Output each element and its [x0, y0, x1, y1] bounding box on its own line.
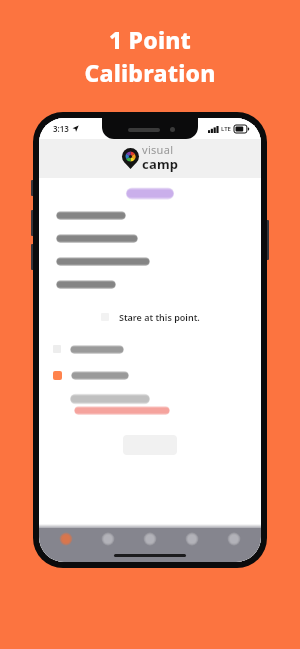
button[interactable]: Stats — [135, 532, 165, 556]
staticText: Calibration — [0, 57, 300, 88]
button[interactable]: Calibration — [177, 532, 207, 556]
staticText: 1 Point — [0, 24, 300, 55]
button[interactable]: Records — [93, 532, 123, 556]
staticText: LTE — [221, 125, 231, 133]
staticText: camp — [142, 155, 179, 173]
staticText: Stare at this point. — [119, 311, 200, 323]
button[interactable]: Settings — [219, 532, 249, 556]
button[interactable]: Home — [51, 532, 81, 556]
staticText: 3:13 — [53, 123, 69, 134]
staticText: visual — [142, 142, 174, 157]
